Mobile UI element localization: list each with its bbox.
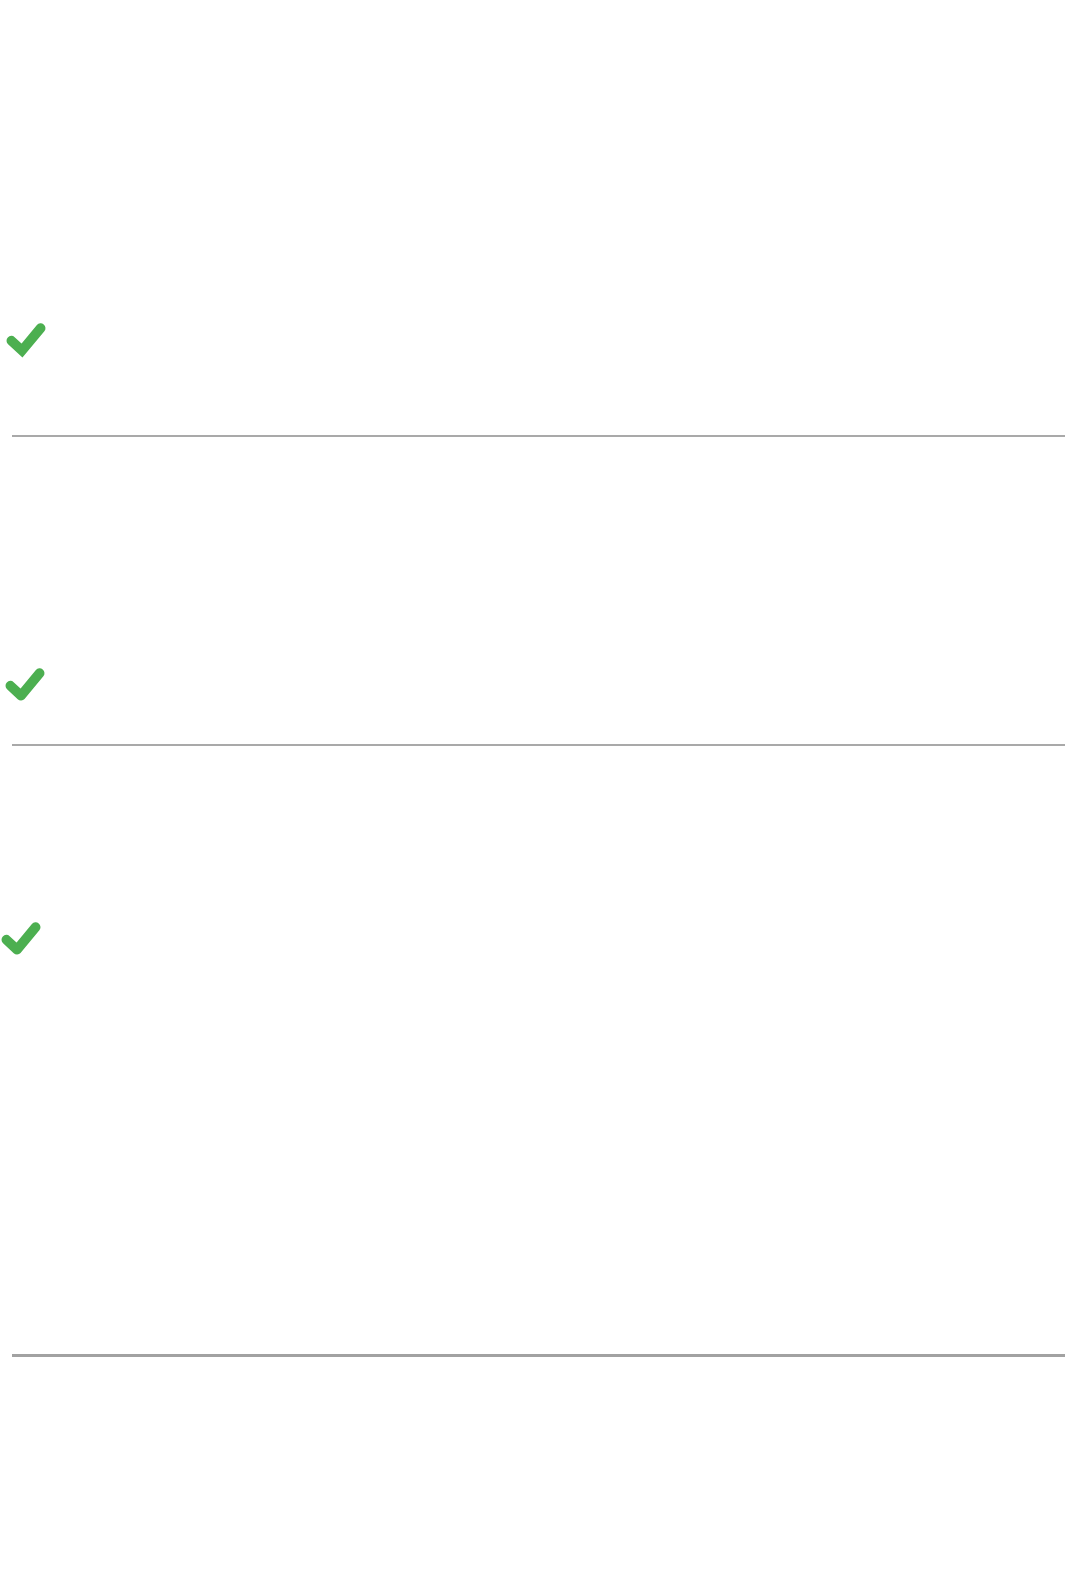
button[interactable]: Completed item 3 <box>0 746 1076 1354</box>
button[interactable]: Completed item 2 <box>0 437 1076 744</box>
button[interactable]: Completed item 1 <box>0 0 1076 435</box>
